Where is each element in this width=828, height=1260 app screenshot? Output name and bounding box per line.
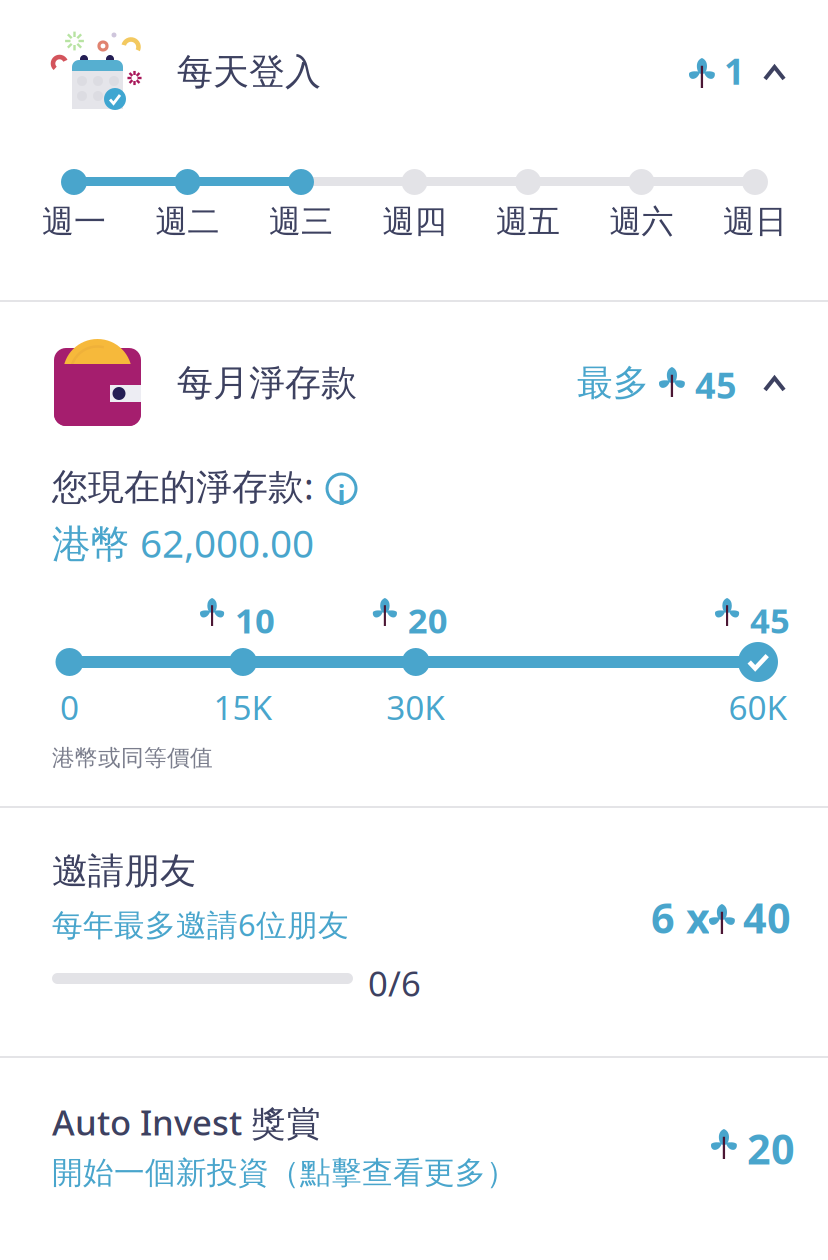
- staticText: 港幣或同等價值: [52, 744, 213, 772]
- staticText: 0: [60, 685, 79, 729]
- button[interactable]: Auto Invest 獎賞: [0, 1058, 828, 1258]
- staticText: 週一: [42, 202, 106, 241]
- staticText: 週六: [609, 202, 673, 241]
- button[interactable]: 每天登入: [0, 0, 828, 140]
- staticText: i: [337, 477, 345, 512]
- staticText: 6 x: [651, 890, 710, 945]
- staticText: 您現在的淨存款:: [52, 462, 314, 510]
- staticText: Auto Invest 獎賞: [52, 1099, 321, 1145]
- button[interactable]: 每月淨存款: [0, 336, 828, 456]
- button[interactable]: 邀請朋友: [0, 808, 828, 1058]
- staticText: 週三: [269, 202, 333, 241]
- staticText: 20: [408, 597, 448, 643]
- staticText: 40: [743, 890, 791, 945]
- staticText: 20: [747, 1121, 795, 1176]
- staticText: 每月淨存款: [177, 361, 357, 405]
- staticText: 15K: [213, 685, 272, 729]
- staticText: 週二: [155, 202, 219, 241]
- staticText: 開始一個新投資（點擊查看更多）: [52, 1154, 517, 1192]
- staticText: 最多: [577, 361, 649, 405]
- staticText: 邀請朋友: [52, 849, 196, 893]
- staticText: 每天登入: [177, 50, 321, 94]
- staticText: 1: [724, 47, 745, 95]
- staticText: 0/6: [368, 960, 421, 1006]
- staticText: 60K: [728, 685, 787, 729]
- staticText: 30K: [386, 685, 445, 729]
- staticText: 每年最多邀請6位朋友: [52, 904, 349, 945]
- staticText: 週五: [496, 202, 560, 241]
- staticText: 10: [235, 597, 275, 643]
- staticText: 45: [750, 597, 790, 643]
- staticText: 港幣 62,000.00: [52, 517, 314, 568]
- staticText: 45: [695, 361, 737, 409]
- staticText: 週日: [723, 202, 787, 241]
- staticText: 週四: [382, 202, 446, 241]
